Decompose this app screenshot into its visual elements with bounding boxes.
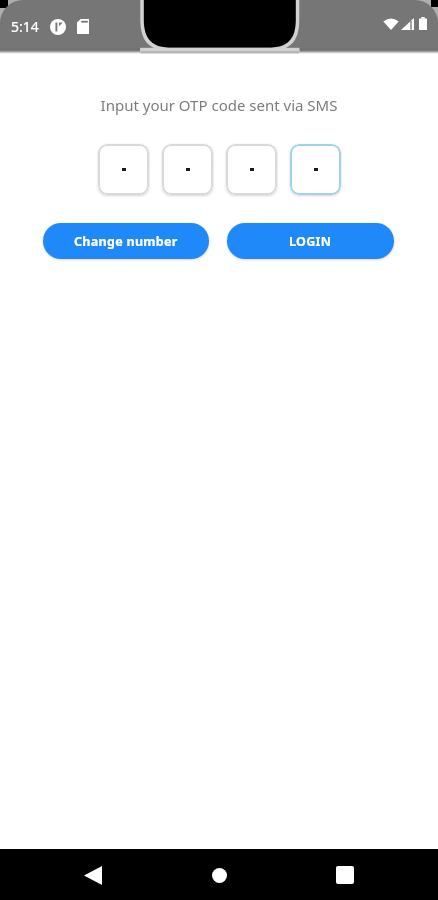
staticText: 5:14: [11, 17, 39, 36]
staticText: Input your OTP code sent via SMS: [0, 95, 438, 115]
button[interactable]: [290, 144, 341, 195]
button[interactable]: [226, 144, 277, 195]
button[interactable]: LOGIN: [227, 223, 394, 259]
button[interactable]: Back: [73, 855, 113, 895]
button[interactable]: Change number: [43, 223, 209, 259]
button[interactable]: [98, 144, 149, 195]
button[interactable]: Recents: [325, 855, 365, 895]
button[interactable]: [162, 144, 213, 195]
button[interactable]: Home: [199, 855, 239, 895]
staticText: Change number: [74, 233, 178, 250]
staticText: LOGIN: [289, 233, 332, 250]
